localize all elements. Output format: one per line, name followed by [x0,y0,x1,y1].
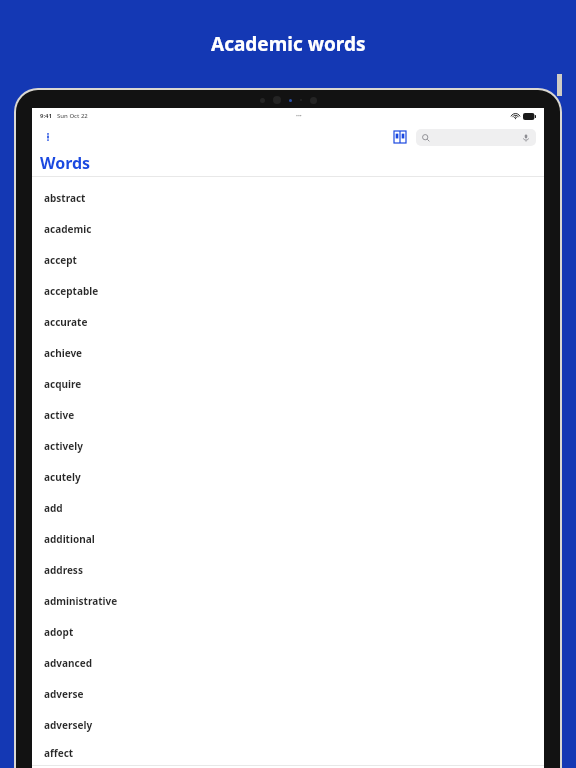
staticText: acquire [44,377,82,391]
button[interactable]: acceptable [32,275,544,306]
staticText: acceptable [44,284,99,298]
button[interactable]: address [32,554,544,585]
button[interactable]: affect [32,740,544,765]
button[interactable]: advanced [32,647,544,678]
staticText: Sun Oct 22 [57,112,88,120]
button[interactable]: Search [416,129,536,146]
staticText: actively [44,439,83,453]
button[interactable]: additional [32,523,544,554]
button[interactable]: adopt [32,616,544,647]
button[interactable]: abstract [32,182,544,213]
button[interactable]: adverse [32,678,544,709]
button[interactable]: actively [32,430,544,461]
staticText: adverse [44,687,84,701]
staticText: advanced [44,656,92,670]
button[interactable]: acquire [32,368,544,399]
staticText: acutely [44,470,81,484]
button[interactable]: acutely [32,461,544,492]
staticText: accurate [44,315,88,329]
staticText: affect [44,746,74,760]
button[interactable]: Dictionary [390,127,410,147]
button[interactable]: administrative [32,585,544,616]
staticText: add [44,501,63,515]
staticText: adversely [44,718,93,732]
staticText: address [44,563,83,577]
staticText: ••• [296,113,302,120]
button[interactable]: accept [32,244,544,275]
staticText: abstract [44,191,86,205]
staticText: active [44,408,75,422]
staticText: accept [44,253,77,267]
button[interactable]: academic [32,213,544,244]
button[interactable]: active [32,399,544,430]
button[interactable]: accurate [32,306,544,337]
staticText: adopt [44,625,74,639]
staticText: Academic words [211,31,366,57]
staticText: achieve [44,346,83,360]
button[interactable]: adversely [32,709,544,740]
staticText: 9:41 [40,112,52,120]
staticText: Words [40,152,91,174]
staticText: additional [44,532,95,546]
button[interactable]: add [32,492,544,523]
staticText: academic [44,222,92,236]
button[interactable]: Show sidebar [40,129,56,145]
staticText: administrative [44,594,118,608]
button[interactable]: achieve [32,337,544,368]
